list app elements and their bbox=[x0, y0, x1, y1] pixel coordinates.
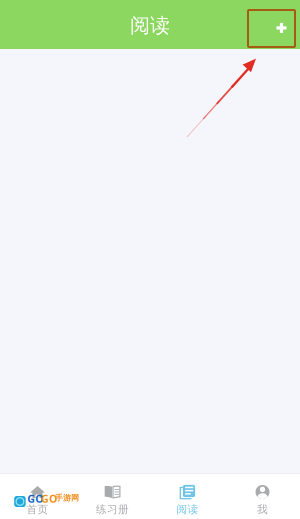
staticText: GO bbox=[27, 492, 43, 506]
button[interactable]: Add bbox=[253, 2, 300, 46]
staticText: 手游网 bbox=[55, 493, 79, 503]
button[interactable]: 练习册 bbox=[75, 474, 150, 519]
button[interactable]: 首页 bbox=[0, 474, 75, 519]
staticText: 我 bbox=[257, 503, 268, 516]
staticText: 首页 bbox=[26, 503, 48, 516]
button[interactable]: 阅读 bbox=[150, 474, 225, 519]
button[interactable]: 我 bbox=[225, 474, 300, 519]
staticText: 阅读 bbox=[130, 13, 170, 38]
staticText: 练习册 bbox=[96, 503, 129, 516]
staticText: GO bbox=[41, 492, 57, 506]
staticText: 阅读 bbox=[176, 503, 198, 516]
